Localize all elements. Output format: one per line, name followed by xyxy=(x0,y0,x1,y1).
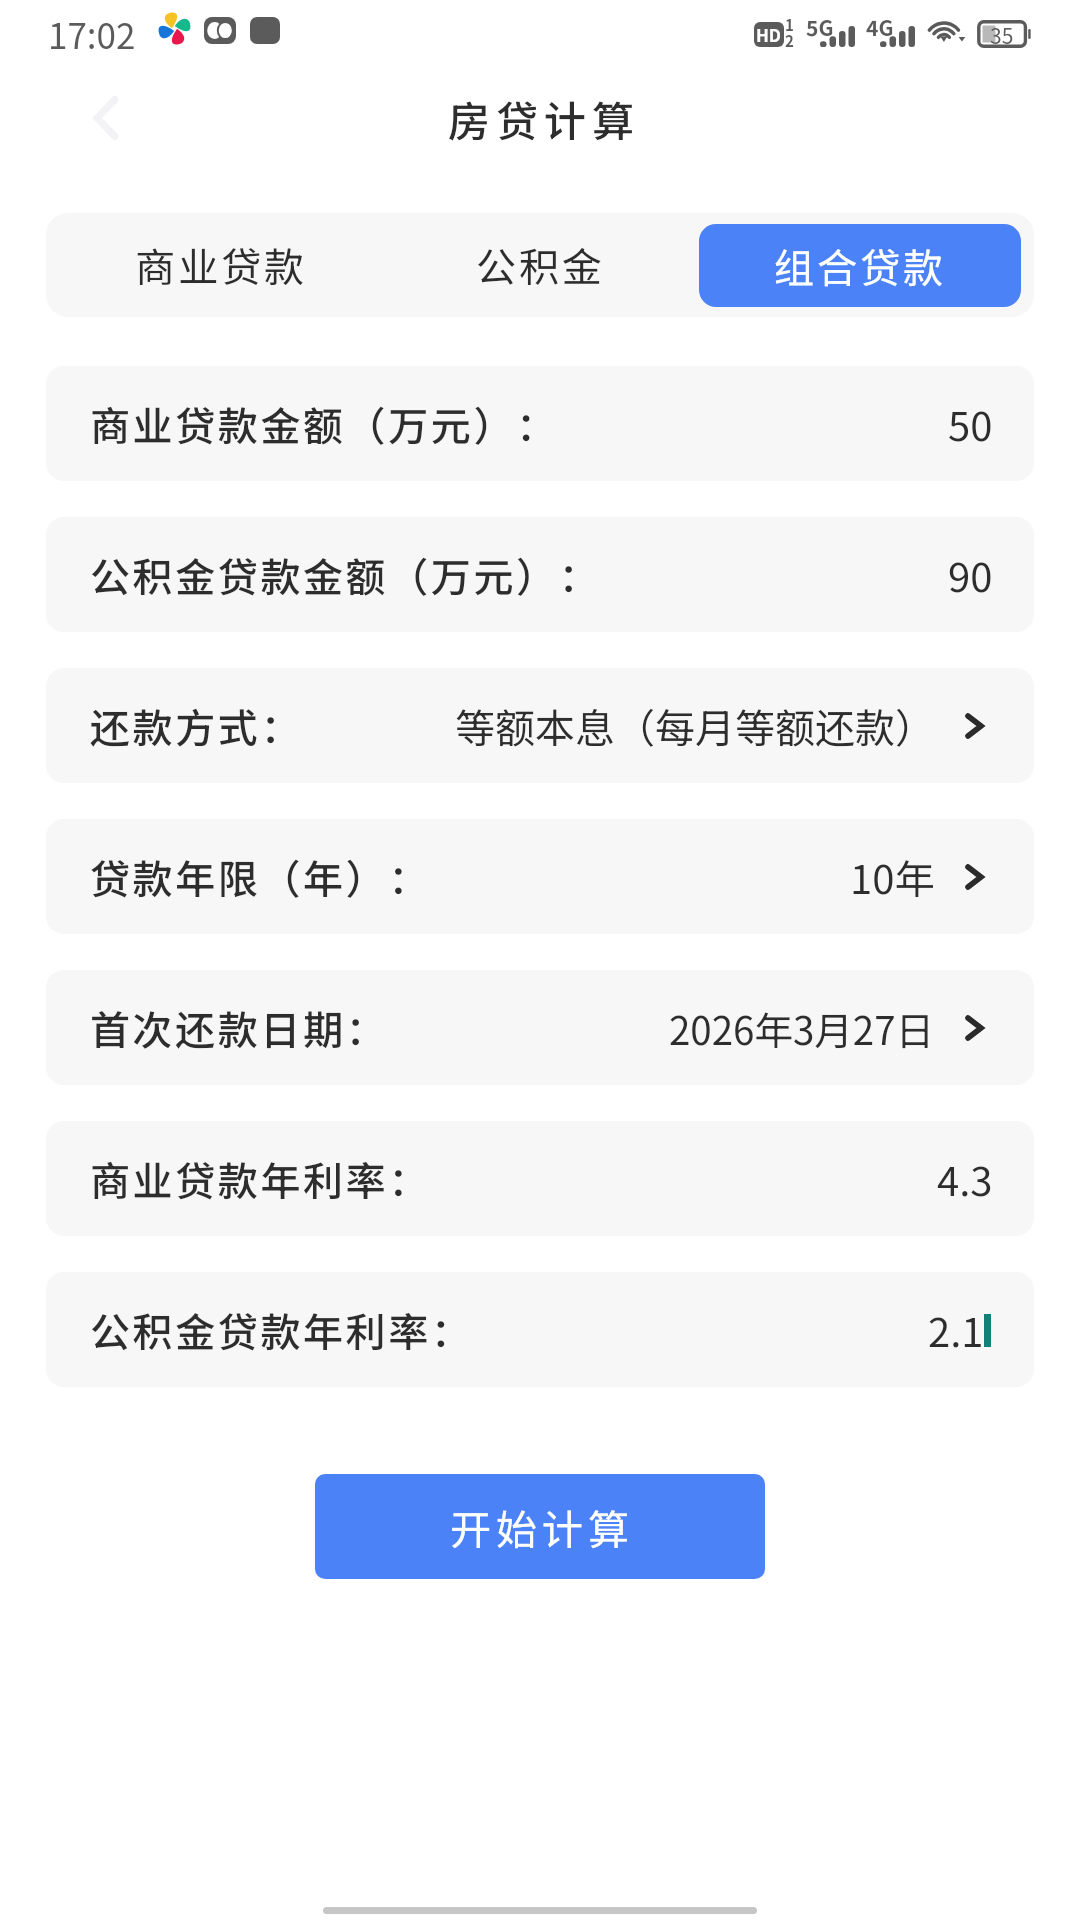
staticText: 2.1 xyxy=(928,1301,984,1359)
staticText: 4.3 xyxy=(937,1150,993,1208)
staticText: 2 xyxy=(785,30,794,52)
button[interactable]: 公积金贷款金额（万元）： xyxy=(46,517,1034,632)
staticText: 还款方式： xyxy=(90,697,303,755)
staticText: 公积金贷款金额（万元）： xyxy=(90,546,602,604)
staticText: 1 xyxy=(785,14,794,36)
staticText: 组合贷款 xyxy=(774,237,946,295)
staticText: 2026年3月27日 xyxy=(669,1000,935,1056)
staticText: 等额本息（每月等额还款） xyxy=(455,697,935,755)
staticText: 17:02 xyxy=(48,8,136,59)
staticText: 商业贷款金额（万元）： xyxy=(90,395,559,453)
staticText: 4G xyxy=(866,12,894,42)
staticText: 公积金 xyxy=(476,236,605,294)
button[interactable]: 贷款年限（年）： xyxy=(46,819,1034,934)
staticText: 贷款年限（年）： xyxy=(90,848,431,906)
staticText: 90 xyxy=(948,546,993,604)
staticText: 商业贷款 xyxy=(135,236,307,294)
staticText: 5G xyxy=(806,12,834,42)
button[interactable]: Back xyxy=(76,88,136,148)
button[interactable]: 公积金 xyxy=(377,213,703,317)
staticText: HD xyxy=(756,22,782,47)
button[interactable]: 首次还款日期： xyxy=(46,970,1034,1085)
staticText: 商业贷款年利率： xyxy=(90,1150,431,1208)
staticText: 房贷计算 xyxy=(448,88,641,149)
button[interactable]: 组合贷款 xyxy=(699,224,1021,307)
button[interactable]: 商业贷款金额（万元）： xyxy=(46,366,1034,481)
staticText: 10年 xyxy=(850,848,935,906)
button[interactable]: 商业贷款年利率： xyxy=(46,1121,1034,1236)
button[interactable]: 商业贷款 xyxy=(58,213,384,317)
staticText: 开始计算 xyxy=(450,1497,634,1556)
button[interactable]: 还款方式： xyxy=(46,668,1034,783)
button[interactable]: 开始计算 xyxy=(315,1474,765,1579)
staticText: 35 xyxy=(990,20,1014,48)
staticText: 首次还款日期： xyxy=(90,999,389,1057)
staticText: 公积金贷款年利率： xyxy=(90,1301,474,1359)
button[interactable]: 公积金贷款年利率： xyxy=(46,1272,1034,1387)
staticText: 50 xyxy=(948,395,993,453)
